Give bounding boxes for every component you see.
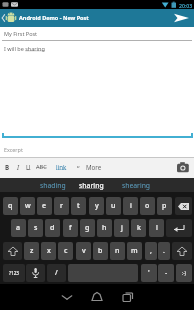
staticText: l	[156, 223, 158, 233]
button[interactable]: ,	[145, 242, 157, 260]
button[interactable]	[176, 161, 190, 173]
staticText: :-)	[182, 270, 186, 276]
staticText: k	[137, 223, 141, 233]
button[interactable]: '	[141, 264, 157, 282]
staticText: shearing	[122, 181, 151, 190]
button[interactable]: B	[5, 163, 10, 171]
staticText: shading	[40, 181, 66, 190]
button[interactable]	[175, 197, 192, 215]
staticText: s	[34, 223, 38, 233]
button[interactable]: d	[45, 219, 60, 237]
staticText: Android Demo - New Post	[19, 14, 89, 21]
button[interactable]: y	[89, 197, 104, 215]
button[interactable]: .	[158, 242, 170, 260]
button[interactable]: I	[17, 163, 20, 171]
button[interactable]	[172, 242, 192, 260]
button[interactable]	[3, 242, 22, 260]
button[interactable]: h	[97, 219, 112, 237]
button[interactable]: b	[93, 242, 108, 260]
button[interactable]: t	[71, 197, 86, 215]
button[interactable]: j	[114, 219, 129, 237]
button[interactable]: i	[123, 197, 138, 215]
button[interactable]: e	[37, 197, 52, 215]
button[interactable]: shading	[30, 178, 75, 192]
staticText: v	[82, 246, 86, 256]
staticText: e	[42, 201, 47, 211]
staticText: /	[55, 268, 58, 278]
button[interactable]: o	[140, 197, 155, 215]
button[interactable]: ?123	[3, 264, 25, 282]
button[interactable]: link	[56, 163, 67, 171]
staticText: '	[148, 268, 150, 278]
staticText: t	[77, 201, 80, 211]
button[interactable]: w	[20, 197, 35, 215]
button[interactable]: z	[24, 242, 39, 260]
button[interactable]	[121, 290, 135, 304]
staticText: n	[115, 246, 120, 256]
button[interactable]: n	[110, 242, 125, 260]
button[interactable]: f	[63, 219, 78, 237]
button[interactable]: s	[28, 219, 43, 237]
button[interactable]: u	[106, 197, 121, 215]
staticText: r	[60, 201, 63, 211]
button[interactable]: c	[58, 242, 73, 260]
staticText: q	[8, 201, 13, 211]
button[interactable]: a	[11, 219, 26, 237]
staticText: ?123	[9, 270, 19, 276]
button[interactable]: v	[76, 242, 91, 260]
button[interactable]: l	[149, 219, 164, 237]
staticText: m	[131, 246, 138, 256]
button[interactable]: m	[127, 242, 142, 260]
staticText: c	[64, 246, 68, 256]
staticText: h	[102, 223, 107, 233]
button[interactable]	[90, 290, 104, 304]
button[interactable]	[26, 264, 45, 282]
staticText: z	[30, 246, 34, 256]
button[interactable]	[168, 10, 194, 26]
button[interactable]: More	[86, 163, 102, 171]
staticText: i	[130, 201, 132, 211]
button[interactable]: :-)	[176, 264, 192, 282]
button[interactable]	[60, 290, 74, 304]
staticText: -	[165, 268, 168, 278]
button[interactable]: sharing	[69, 178, 114, 192]
button[interactable]: ABC	[36, 163, 47, 171]
button[interactable]: k	[131, 219, 146, 237]
button[interactable]: p	[157, 197, 172, 215]
staticText: d	[50, 223, 55, 233]
staticText: u	[111, 201, 116, 211]
staticText: .	[163, 246, 165, 256]
button[interactable]: “	[77, 164, 80, 174]
staticText: I will be sharing	[4, 45, 45, 52]
staticText: w	[25, 201, 31, 211]
staticText: My First Post	[4, 30, 38, 37]
staticText: o	[145, 201, 150, 211]
button[interactable]: r	[54, 197, 69, 215]
button[interactable]: g	[80, 219, 95, 237]
button[interactable]: q	[3, 197, 18, 215]
staticText: f	[69, 223, 72, 233]
staticText: Excerpt	[4, 146, 23, 153]
button[interactable]: x	[41, 242, 56, 260]
button[interactable]: /	[47, 264, 66, 282]
staticText: 20:03	[179, 2, 193, 9]
staticText: g	[85, 223, 90, 233]
staticText: ,	[150, 246, 152, 256]
staticText: b	[98, 246, 103, 256]
staticText: y	[95, 201, 99, 211]
button[interactable]: shearing	[114, 178, 159, 192]
staticText: p	[162, 201, 167, 211]
button[interactable]: -	[158, 264, 174, 282]
staticText: x	[47, 246, 51, 256]
button[interactable]: U	[26, 163, 31, 171]
staticText: j	[121, 223, 123, 233]
button[interactable]	[166, 219, 192, 237]
staticText: sharing	[79, 181, 104, 190]
staticText: a	[16, 223, 21, 233]
